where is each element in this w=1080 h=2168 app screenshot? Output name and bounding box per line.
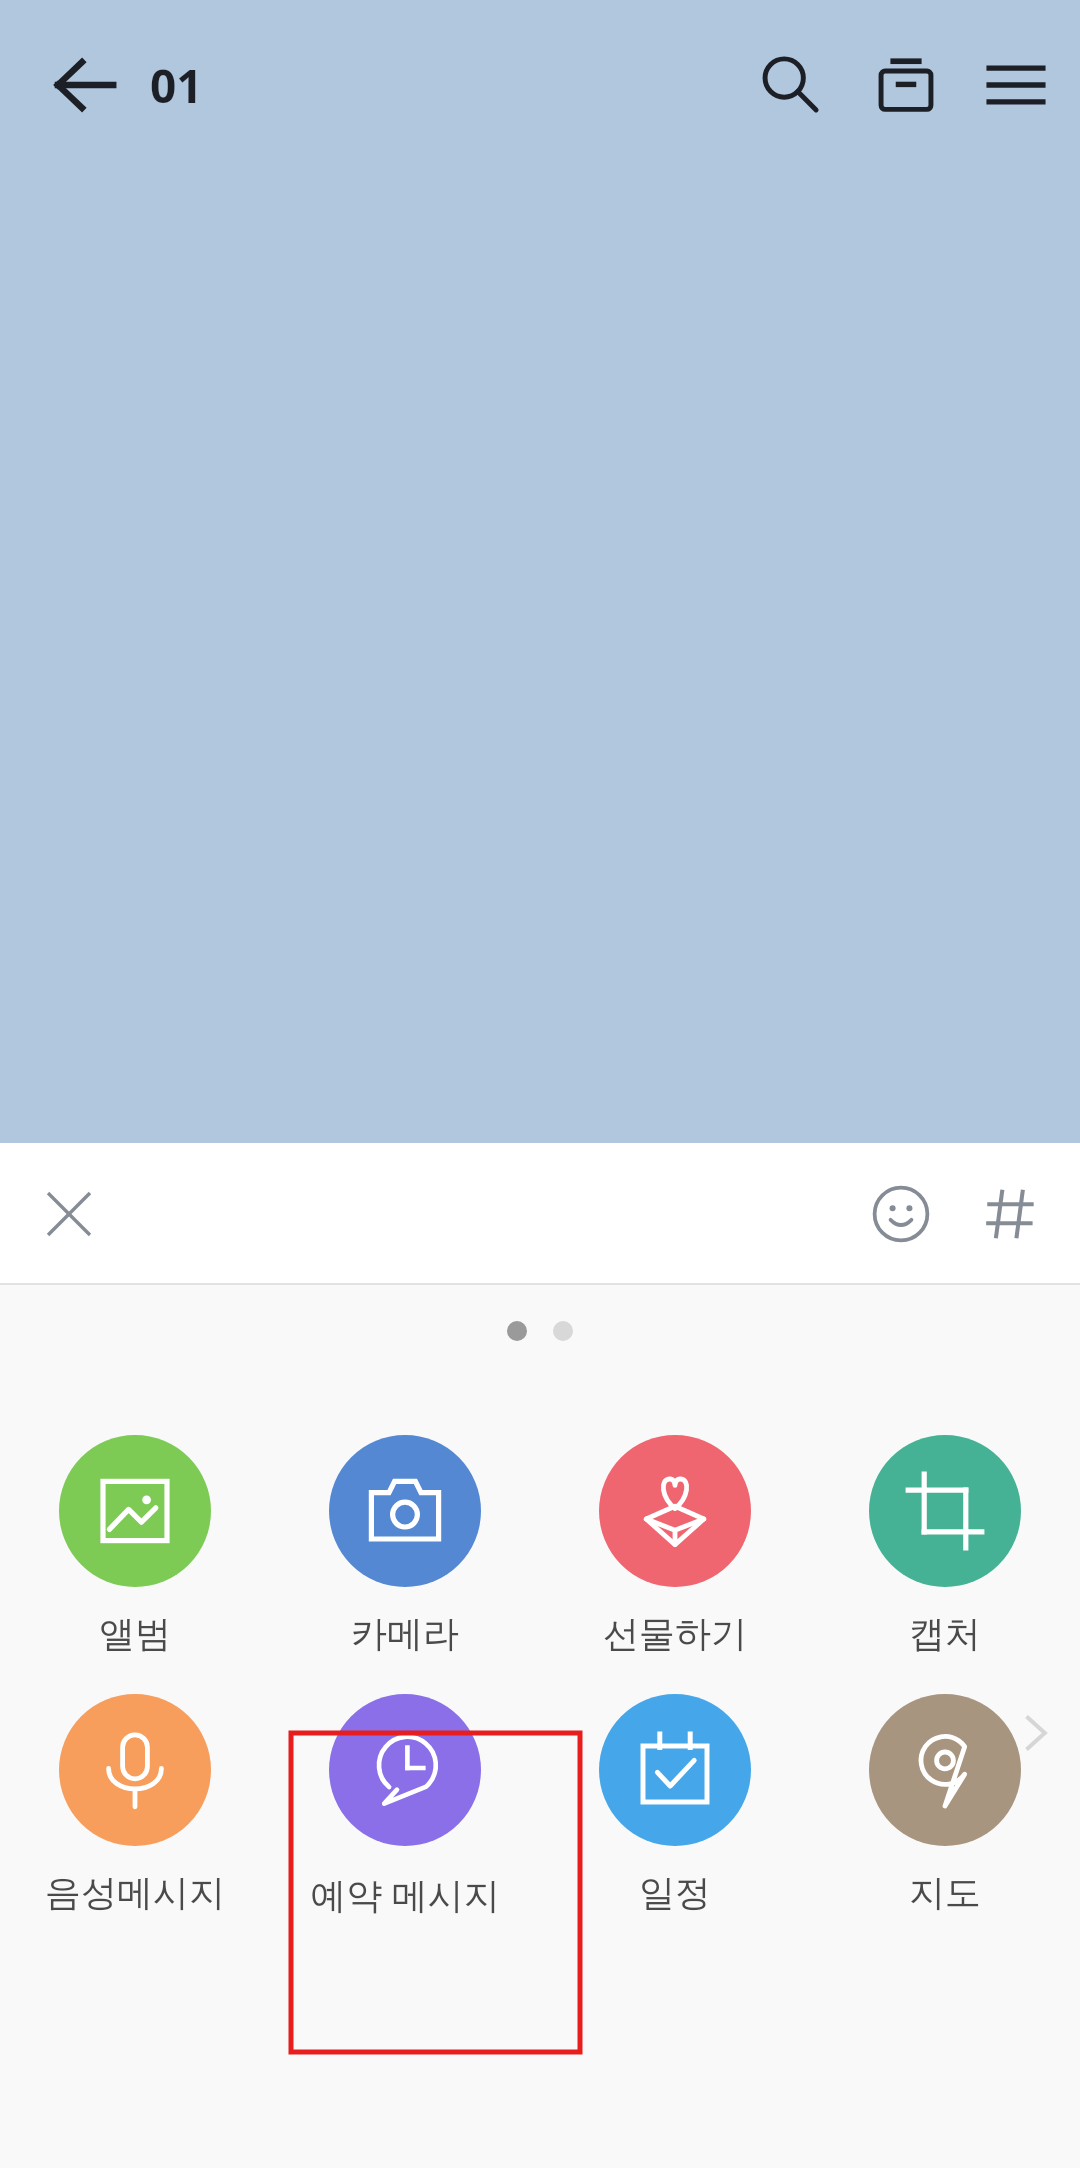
staticText: 캡처 xyxy=(909,1611,981,1656)
button[interactable]: 카메라 xyxy=(270,1435,540,1656)
button[interactable]: 일정 xyxy=(540,1694,810,1915)
button[interactable]: 지도 xyxy=(810,1694,1080,1915)
button[interactable]: Next page xyxy=(1006,1703,1066,1763)
staticText: 예약 메시지 xyxy=(310,1870,500,1919)
button[interactable]: 예약 메시지 xyxy=(270,1694,540,1919)
button[interactable]: Close xyxy=(14,1159,124,1269)
staticText: 지도 xyxy=(909,1870,981,1915)
button[interactable]: Hashtag xyxy=(956,1159,1066,1269)
button[interactable]: 캡처 xyxy=(810,1435,1080,1656)
button[interactable]: Archive xyxy=(848,27,964,143)
staticText: 선물하기 xyxy=(603,1611,747,1656)
button[interactable]: Back xyxy=(30,30,140,140)
staticText: 일정 xyxy=(639,1870,711,1915)
staticText: 카메라 xyxy=(351,1611,459,1656)
staticText: 앨범 xyxy=(99,1611,171,1656)
button[interactable]: 앨범 xyxy=(0,1435,270,1656)
staticText: 01 xyxy=(150,54,203,117)
staticText: 음성메시지 xyxy=(45,1870,225,1915)
button[interactable]: 음성메시지 xyxy=(0,1694,270,1915)
button[interactable]: Emoji xyxy=(846,1159,956,1269)
button[interactable]: 선물하기 xyxy=(540,1435,810,1656)
button[interactable]: Search xyxy=(732,27,848,143)
button[interactable]: Menu xyxy=(964,27,1068,143)
